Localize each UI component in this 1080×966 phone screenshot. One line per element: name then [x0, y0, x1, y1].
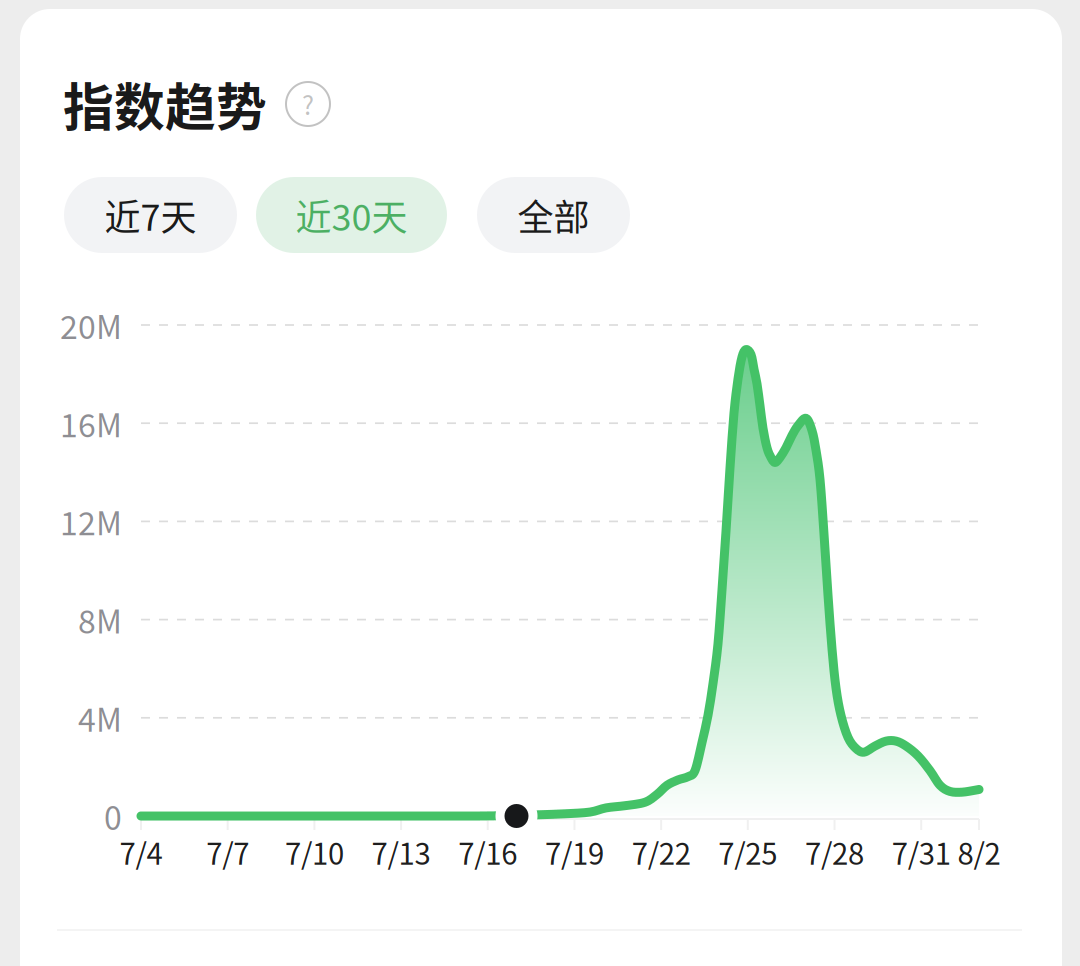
staticText: 12M: [60, 498, 122, 544]
staticText: 8M: [78, 596, 122, 643]
staticText: 7/4: [119, 831, 162, 873]
staticText: 7/28: [805, 831, 864, 873]
staticText: 全部: [517, 189, 589, 241]
button[interactable]: Help: [286, 82, 330, 126]
button[interactable]: 近7天: [64, 177, 237, 253]
staticText: 4M: [78, 695, 122, 741]
button[interactable]: 近30天: [256, 177, 447, 253]
staticText: 7/25: [718, 831, 777, 873]
staticText: 7/13: [372, 831, 431, 873]
staticText: 近7天: [104, 189, 196, 241]
staticText: 7/7: [206, 831, 249, 873]
staticText: 0: [104, 793, 122, 839]
staticText: 7/22: [632, 831, 691, 873]
staticText: ?: [302, 86, 314, 122]
button[interactable]: 全部: [477, 177, 630, 253]
staticText: 16M: [60, 400, 122, 446]
staticText: 8/2: [957, 831, 1000, 873]
staticText: 7/19: [545, 831, 604, 873]
staticText: 7/16: [458, 831, 517, 873]
staticText: 20M: [60, 302, 122, 348]
staticText: 指数趋势: [63, 67, 267, 141]
staticText: 近30天: [295, 189, 407, 241]
staticText: 7/10: [285, 831, 344, 873]
staticText: 7/31: [892, 831, 951, 873]
